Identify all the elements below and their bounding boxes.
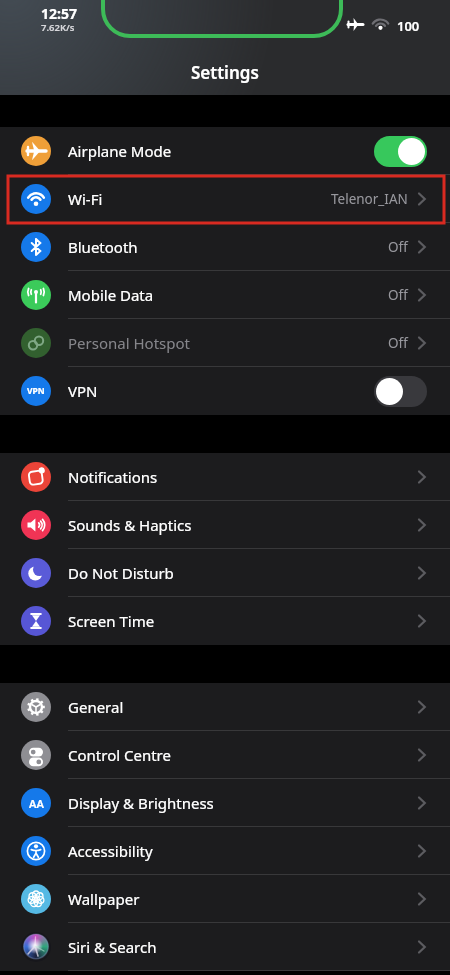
- staticText: Settings: [191, 61, 259, 84]
- button[interactable]: General: [0, 683, 450, 731]
- staticText: Notifications: [68, 467, 158, 487]
- staticText: Display & Brightness: [68, 793, 214, 813]
- button[interactable]: Do Not Disturb: [0, 549, 450, 597]
- staticText: Off: [388, 286, 408, 304]
- staticText: Wi-Fi: [68, 189, 103, 209]
- button[interactable]: [374, 376, 427, 407]
- staticText: Telenor_IAN: [331, 190, 408, 208]
- staticText: Personal Hotspot: [68, 333, 190, 353]
- button[interactable]: Bluetooth: [0, 223, 450, 271]
- staticText: Screen Time: [68, 611, 155, 631]
- button[interactable]: Notifications: [0, 453, 450, 501]
- staticText: Accessibility: [68, 841, 153, 861]
- staticText: Control Centre: [68, 745, 171, 765]
- button[interactable]: Wallpaper: [0, 875, 450, 923]
- staticText: Wallpaper: [68, 889, 140, 909]
- staticText: Mobile Data: [68, 285, 154, 305]
- button[interactable]: Wi-Fi: [0, 175, 450, 223]
- button[interactable]: Screen Time: [0, 597, 450, 645]
- button[interactable]: Mobile Data: [0, 271, 450, 319]
- button[interactable]: Sounds & Haptics: [0, 501, 450, 549]
- staticText: Airplane Mode: [68, 141, 172, 161]
- staticText: AA: [29, 796, 44, 811]
- staticText: General: [68, 697, 124, 717]
- staticText: 7.62K/s: [41, 21, 75, 34]
- button[interactable]: AA: [0, 779, 450, 827]
- staticText: Siri & Search: [68, 937, 157, 957]
- button[interactable]: Personal Hotspot: [0, 319, 450, 367]
- staticText: Do Not Disturb: [68, 563, 174, 583]
- staticText: Off: [388, 334, 408, 352]
- staticText: Off: [388, 238, 408, 256]
- staticText: 12:57: [41, 4, 77, 23]
- staticText: Sounds & Haptics: [68, 515, 192, 535]
- staticText: VPN: [27, 385, 45, 397]
- button[interactable]: Control Centre: [0, 731, 450, 779]
- staticText: Bluetooth: [68, 237, 138, 257]
- button[interactable]: VPN: [0, 367, 450, 415]
- button[interactable]: [374, 136, 427, 167]
- button[interactable]: Siri & Search: [0, 923, 450, 971]
- staticText: VPN: [68, 381, 98, 401]
- button[interactable]: Accessibility: [0, 827, 450, 875]
- staticText: 100: [397, 17, 420, 35]
- button[interactable]: Airplane Mode: [0, 127, 450, 175]
